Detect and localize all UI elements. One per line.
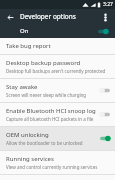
staticText: Developer options bbox=[20, 12, 99, 21]
staticText: OEM unlocking bbox=[6, 131, 49, 139]
button[interactable]: Stay awake bbox=[0, 79, 115, 102]
staticText: Take bug report bbox=[6, 42, 51, 50]
staticText: Allow the bootloader to be unlocked bbox=[6, 140, 83, 146]
staticText: Desktop backup password bbox=[6, 59, 81, 67]
button[interactable]: More options bbox=[99, 11, 111, 23]
staticText: On bbox=[20, 27, 97, 35]
button[interactable]: OEM unlocking bbox=[0, 127, 115, 150]
button[interactable]: On bbox=[0, 24, 115, 38]
staticText: Desktop full backups aren't currently pr… bbox=[6, 68, 106, 74]
staticText: Screen will never sleep while charging bbox=[6, 92, 87, 98]
staticText: Enable Bluetooth HCI snoop log bbox=[6, 107, 96, 115]
staticText: Capture all bluetooth HCI packets in a f… bbox=[6, 116, 94, 122]
button[interactable]: Enable Bluetooth HCI snoop log bbox=[0, 103, 115, 126]
button[interactable]: Take bug report bbox=[0, 38, 115, 54]
button[interactable]: Desktop backup password bbox=[0, 55, 115, 78]
button[interactable]: Running services bbox=[0, 151, 115, 174]
staticText: 3:27 bbox=[103, 1, 113, 8]
staticText: View and control currently running servi… bbox=[6, 164, 98, 170]
staticText: Running services bbox=[6, 155, 54, 163]
staticText: Stay awake bbox=[6, 83, 38, 91]
button[interactable]: Back bbox=[4, 11, 16, 23]
